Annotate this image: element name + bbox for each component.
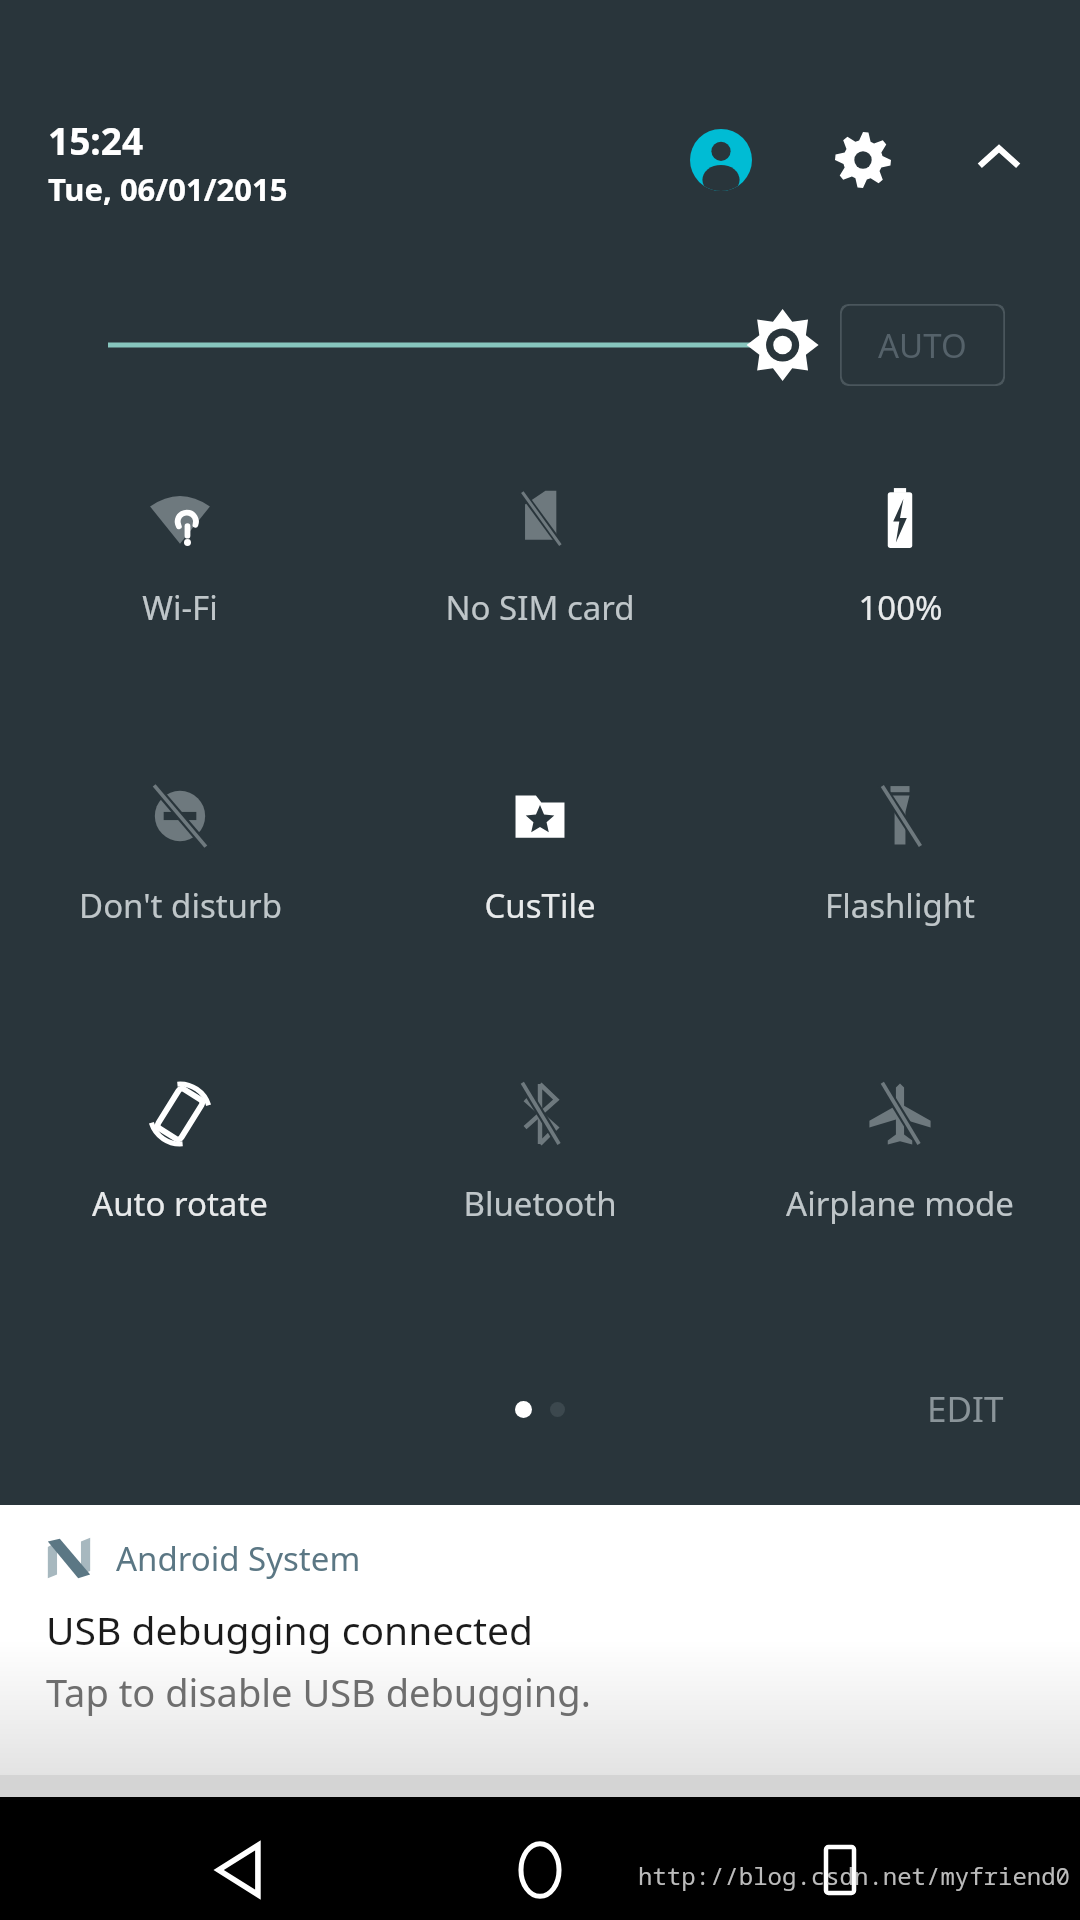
button[interactable]: Don't disturb — [0, 773, 360, 943]
staticText: Tue, 06/01/2015 — [48, 168, 288, 210]
staticText: Wi-Fi — [142, 585, 218, 630]
staticText: Bluetooth — [463, 1181, 617, 1226]
staticText: Auto rotate — [92, 1181, 268, 1226]
button[interactable]: User account — [678, 117, 764, 203]
button[interactable]: AUTO — [840, 304, 1005, 386]
button[interactable]: Auto rotate — [0, 1071, 360, 1241]
staticText: No SIM card — [445, 585, 635, 630]
button[interactable]: Collapse — [956, 117, 1042, 203]
staticText: http://blog.csdn.net/myfriend0 — [638, 1859, 1070, 1892]
button[interactable]: Home — [480, 1819, 600, 1920]
staticText: AUTO — [878, 323, 967, 368]
staticText: 15:24 — [48, 115, 144, 165]
button[interactable]: Back — [180, 1819, 300, 1920]
button[interactable]: Flashlight — [720, 773, 1080, 943]
button[interactable]: Android System — [0, 1505, 1080, 1775]
staticText: USB debugging connected — [46, 1603, 534, 1656]
button[interactable]: CusTile — [360, 773, 720, 943]
button[interactable]: EDIT — [911, 1375, 1020, 1443]
button[interactable]: Brightness — [108, 295, 824, 395]
staticText: Airplane mode — [786, 1181, 1014, 1226]
button[interactable]: No SIM card — [360, 475, 720, 645]
button[interactable]: Bluetooth — [360, 1071, 720, 1241]
staticText: Tap to disable USB debugging. — [46, 1666, 591, 1718]
button[interactable]: Settings — [820, 117, 906, 203]
button[interactable]: Wi-Fi — [0, 475, 360, 645]
staticText: Flashlight — [825, 883, 975, 928]
button[interactable]: Recents — [780, 1819, 900, 1920]
button[interactable]: 100% — [720, 475, 1080, 645]
staticText: CusTile — [484, 883, 596, 928]
button[interactable]: Airplane mode — [720, 1071, 1080, 1241]
staticText: Don't disturb — [79, 883, 282, 928]
staticText: EDIT — [927, 1385, 1004, 1433]
staticText: 100% — [858, 585, 943, 630]
staticText: Android System — [116, 1536, 361, 1581]
